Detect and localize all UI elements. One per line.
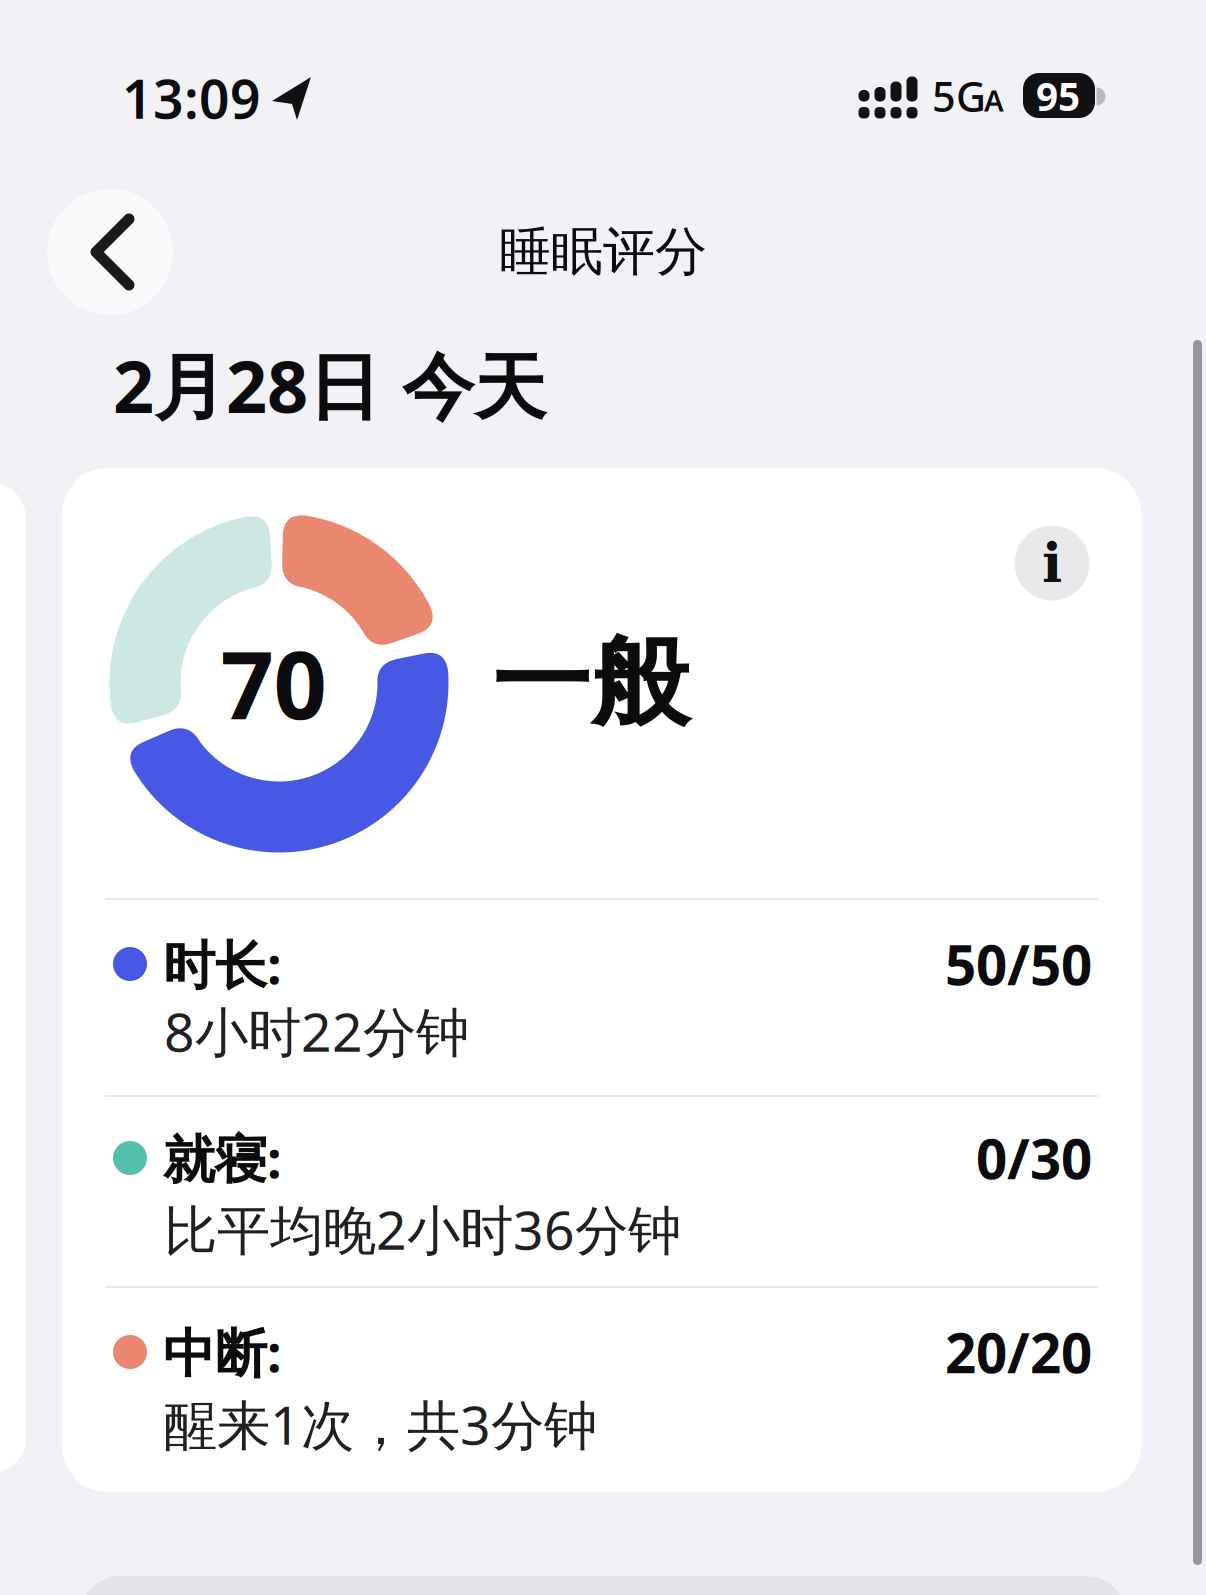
staticText: 醒来1次，共3分钟 [164,1389,597,1459]
staticText: 5G [932,69,986,123]
staticText: 8小时22分钟 [164,996,469,1066]
staticText: i [1042,532,1062,594]
staticText: 13:09 [122,63,261,133]
staticText: 50/50 [945,928,1092,1000]
staticText: 比平均晚2小时36分钟 [164,1194,681,1264]
staticText: 时长: [163,929,282,999]
staticText: 睡眠评分 [499,220,707,284]
staticText: 一般 [492,622,690,744]
staticText: 0/30 [976,1122,1092,1194]
staticText: 2月28日 今天 [113,337,546,433]
button[interactable]: 返回 [47,189,173,315]
staticText: 就寝: [163,1123,282,1193]
staticText: 70 [220,621,326,745]
staticText: 中断: [163,1317,282,1387]
button[interactable]: 信息 [1014,525,1089,600]
staticText: 95 [1036,70,1080,122]
staticText: 20/20 [945,1316,1092,1388]
staticText: A [984,80,1004,119]
